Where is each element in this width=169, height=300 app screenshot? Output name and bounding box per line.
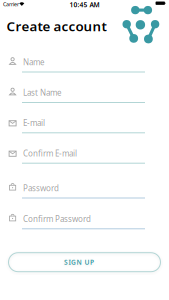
staticText: Carrier: [3, 1, 19, 8]
button[interactable]: SIGN UP: [8, 252, 161, 272]
staticText: SIGN UP: [64, 258, 94, 267]
button[interactable]: Confirm Password: [0, 207, 169, 235]
staticText: Create account: [6, 17, 106, 35]
button[interactable]: Name: [0, 50, 169, 78]
staticText: Password: [23, 183, 59, 193]
staticText: E-mail: [23, 118, 45, 128]
staticText: Confirm Password: [23, 214, 91, 224]
button[interactable]: E-mail: [0, 111, 169, 139]
staticText: Last Name: [23, 87, 62, 98]
staticText: Name: [23, 57, 45, 67]
staticText: Confirm E-mail: [23, 148, 77, 159]
staticText: 10:45 AM: [69, 0, 99, 9]
button[interactable]: Password: [0, 176, 169, 204]
button[interactable]: Confirm E-mail: [0, 141, 169, 169]
button[interactable]: Last Name: [0, 80, 169, 108]
